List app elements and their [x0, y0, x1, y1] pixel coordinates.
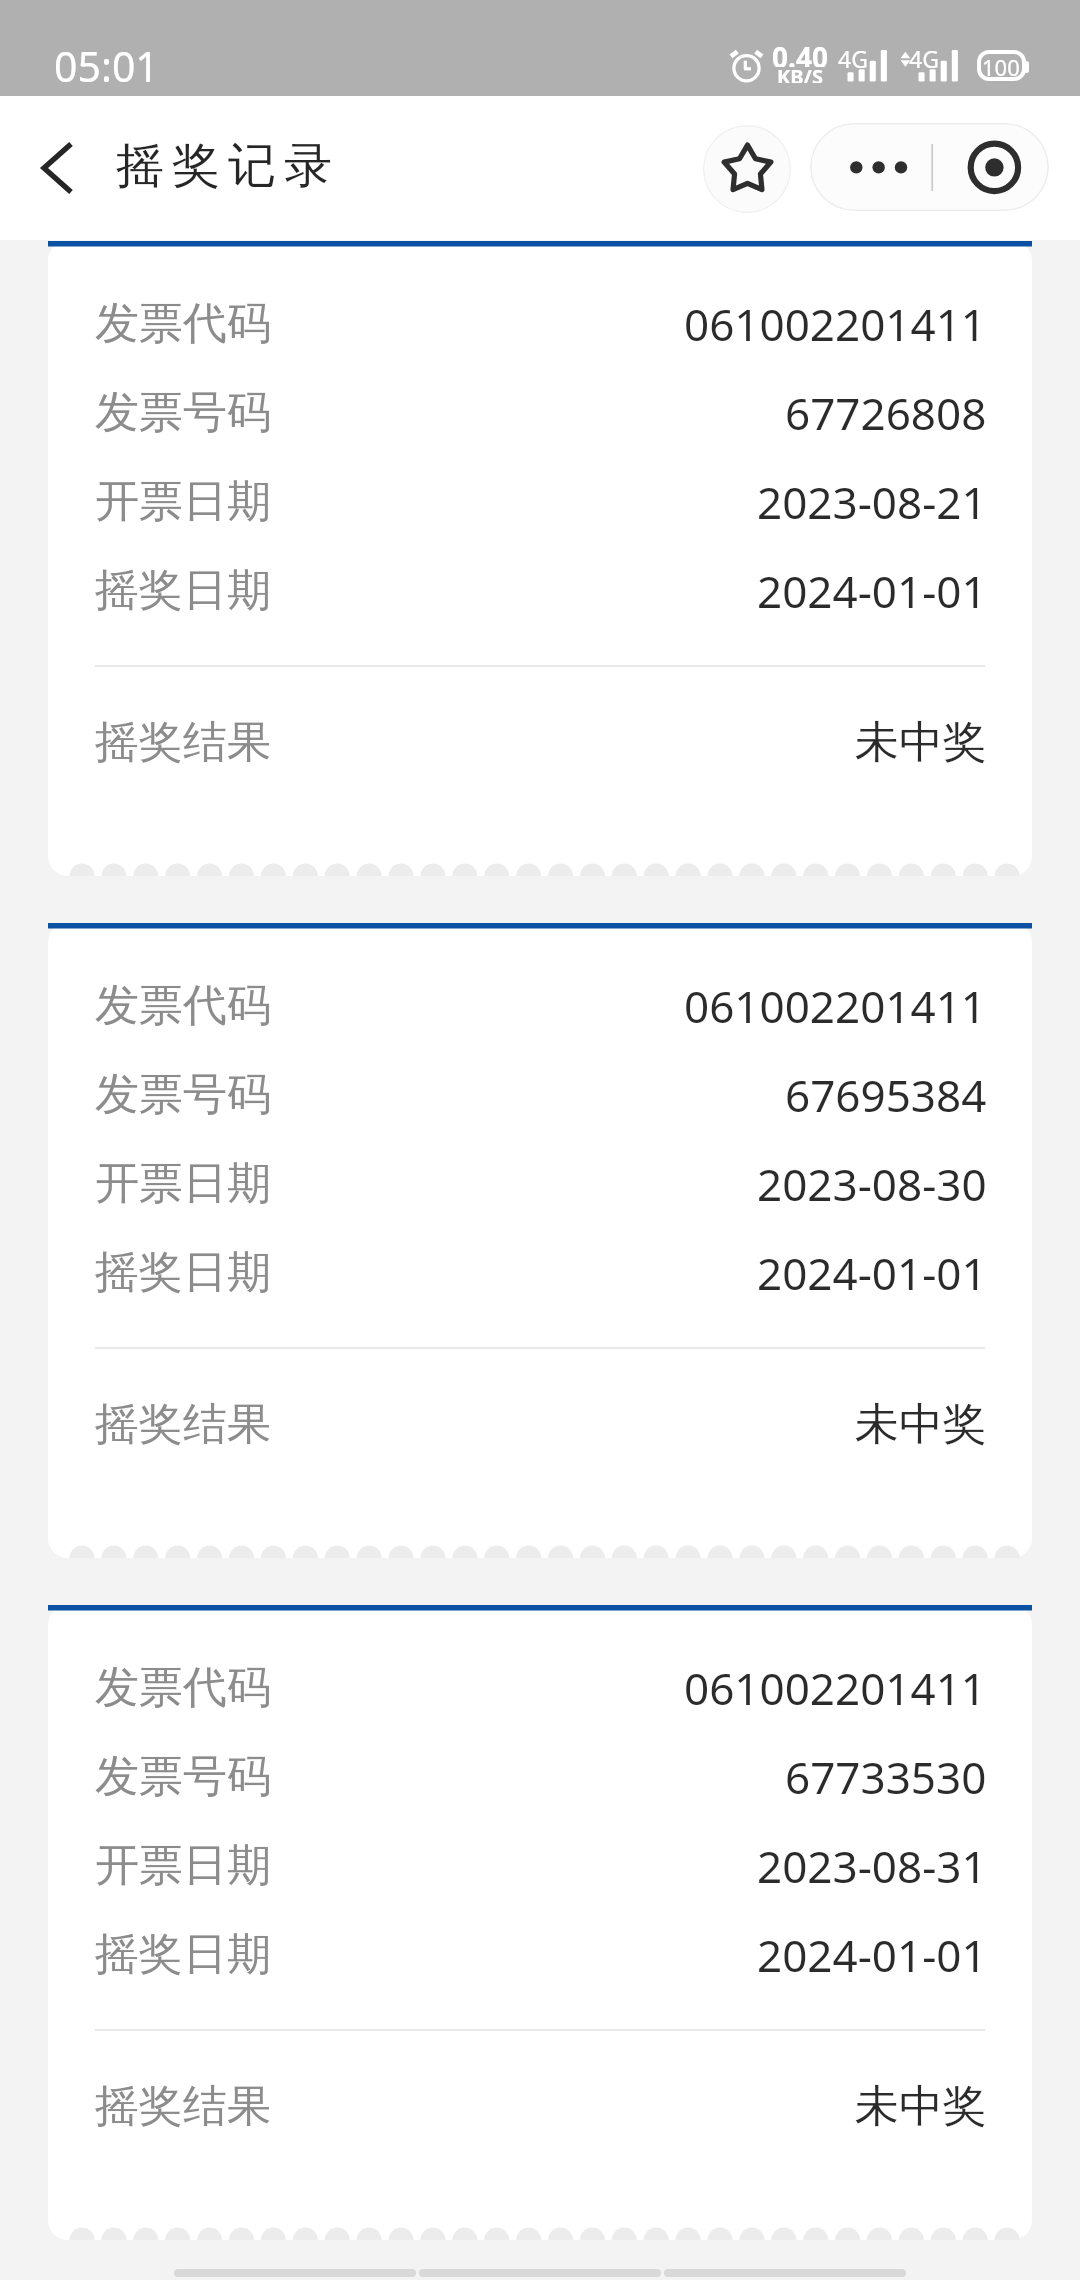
staticText: 2024-01-01 — [757, 561, 987, 621]
staticText: 发票号码 — [95, 1749, 271, 1804]
staticText: 摇奖结果 — [95, 1397, 271, 1452]
staticText: 开票日期 — [95, 1156, 271, 1211]
staticText: 摇奖日期 — [95, 563, 271, 618]
staticText: 100 — [982, 52, 1020, 78]
staticText: 4G — [838, 43, 868, 69]
button[interactable] — [48, 1605, 1032, 2240]
staticText: KB/S — [777, 63, 823, 83]
staticText: 摇奖记录 — [112, 136, 336, 196]
staticText: 发票代码 — [95, 1660, 271, 1715]
staticText: 摇奖日期 — [95, 1927, 271, 1982]
staticText: 2023-08-30 — [757, 1154, 987, 1214]
staticText: 2023-08-31 — [757, 1836, 987, 1896]
staticText: 4G — [909, 43, 939, 69]
button[interactable] — [48, 923, 1032, 1558]
staticText: 67695384 — [785, 1065, 987, 1125]
staticText: 未中奖 — [855, 2079, 987, 2134]
staticText: 2024-01-01 — [757, 1243, 987, 1303]
staticText: 未中奖 — [855, 1397, 987, 1452]
staticText: 开票日期 — [95, 474, 271, 529]
staticText: 发票号码 — [95, 385, 271, 440]
staticText: 发票代码 — [95, 296, 271, 351]
button[interactable]: Close — [932, 123, 1049, 211]
button[interactable] — [48, 241, 1032, 876]
staticText: 摇奖结果 — [95, 2079, 271, 2134]
button[interactable]: Favorite — [703, 125, 791, 213]
staticText: 开票日期 — [95, 1838, 271, 1893]
staticText: 未中奖 — [855, 715, 987, 770]
staticText: 061002201411 — [684, 294, 987, 354]
staticText: 0.40 — [772, 38, 828, 67]
staticText: 061002201411 — [684, 1658, 987, 1718]
staticText: 摇奖结果 — [95, 715, 271, 770]
staticText: 2023-08-21 — [757, 472, 987, 532]
staticText: 摇奖日期 — [95, 1245, 271, 1300]
staticText: 发票代码 — [95, 978, 271, 1033]
staticText: 061002201411 — [684, 976, 987, 1036]
staticText: 2024-01-01 — [757, 1925, 987, 1985]
staticText: 67726808 — [785, 383, 987, 443]
staticText: 发票号码 — [95, 1067, 271, 1122]
button[interactable]: Back — [8, 120, 104, 216]
button[interactable]: More options — [810, 123, 932, 211]
staticText: 67733530 — [785, 1747, 987, 1807]
staticText: 05:01 — [54, 38, 159, 94]
